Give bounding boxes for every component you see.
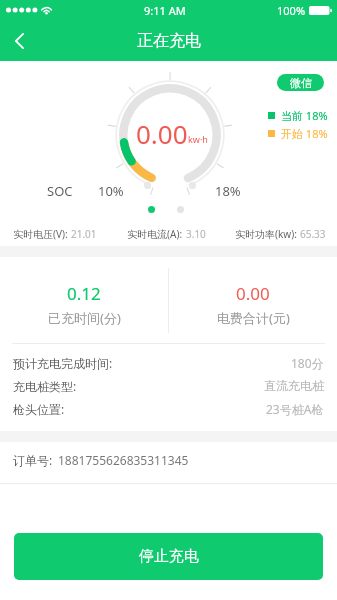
staticText: 实时电压(V): [13,227,68,241]
staticText: 枪头位置: [13,401,65,417]
staticText: 65.33 [300,227,326,241]
staticText: 实时功率(kw): [235,227,297,241]
staticText: 预计充电完成时间: [13,355,113,371]
staticText: 0.00 [236,282,270,305]
staticText: 180分 [291,355,324,371]
staticText: 21.01 [71,227,97,241]
staticText: 100% [277,3,306,18]
staticText: 0.00 [136,116,188,151]
staticText: 10% [98,182,124,200]
staticText: 23号桩A枪 [266,401,324,417]
staticText: 充电桩类型: [13,378,77,394]
staticText: 3.10 [186,227,206,241]
staticText: kw·h [188,133,208,145]
button[interactable]: 停止充电 [14,533,323,580]
staticText: 正在充电 [137,31,201,51]
staticText: 电费合计(元) [217,309,290,327]
staticText: 18% [215,182,241,200]
button[interactable]: 微信 [277,74,324,91]
staticText: 停止充电 [139,547,199,566]
staticText: 微信 [290,76,312,90]
staticText: 订单号: [13,452,53,468]
staticText: 9:11 AM [144,3,186,18]
staticText: SOC [47,182,73,200]
button[interactable]: Back [0,20,38,61]
staticText: 开始 18% [281,126,328,141]
staticText: 0.12 [67,282,101,305]
staticText: 直流充电桩 [264,378,324,393]
staticText: 已充时间(分) [48,309,121,327]
staticText: 当前 18% [281,108,328,123]
staticText: 1881755626835311345 [58,452,189,468]
staticText: 实时电流(A): [127,227,183,241]
